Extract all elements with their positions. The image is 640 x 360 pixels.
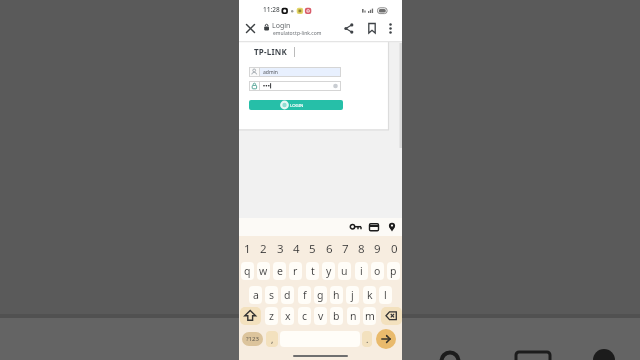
- staticText: i: [360, 264, 363, 278]
- button[interactable]: ?123: [242, 332, 263, 346]
- staticText: u: [341, 264, 348, 278]
- button[interactable]: g: [314, 286, 327, 304]
- button[interactable]: e: [273, 262, 286, 280]
- staticText: d: [284, 288, 291, 302]
- staticText: 1: [244, 241, 251, 256]
- staticText: w: [259, 264, 268, 278]
- staticText: j: [351, 288, 354, 302]
- button[interactable]: [240, 307, 261, 325]
- button[interactable]: y: [322, 262, 335, 280]
- staticText: TP-LINK: [254, 46, 287, 57]
- button[interactable]: 7: [337, 241, 353, 256]
- button[interactable]: x: [281, 307, 294, 325]
- staticText: emulator.tp-link.com: [273, 30, 322, 37]
- staticText: x: [285, 309, 291, 323]
- button[interactable]: k: [363, 286, 376, 304]
- staticText: r: [293, 264, 298, 278]
- button[interactable]: a: [249, 286, 262, 304]
- button[interactable]: ,: [266, 331, 278, 347]
- staticText: 11:28: [263, 5, 280, 14]
- staticText: e: [277, 264, 283, 278]
- staticText: y: [326, 264, 332, 278]
- button[interactable]: [244, 22, 257, 35]
- staticText: z: [269, 309, 274, 323]
- staticText: l: [384, 288, 387, 302]
- button[interactable]: m: [363, 307, 376, 325]
- button[interactable]: 1: [239, 241, 255, 256]
- button[interactable]: admin: [249, 67, 341, 77]
- button[interactable]: l: [379, 286, 392, 304]
- staticText: g: [317, 288, 324, 302]
- staticText: 7: [342, 241, 349, 256]
- staticText: 9: [374, 241, 381, 256]
- button[interactable]: f: [298, 286, 311, 304]
- button[interactable]: i: [355, 262, 368, 280]
- staticText: ?123: [246, 335, 259, 343]
- button[interactable]: LOGIN: [249, 100, 343, 110]
- button[interactable]: t: [306, 262, 319, 280]
- button[interactable]: 3: [272, 241, 288, 256]
- button[interactable]: v: [314, 307, 327, 325]
- staticText: 3: [277, 241, 284, 256]
- button[interactable]: b: [330, 307, 343, 325]
- button[interactable]: [376, 329, 396, 349]
- staticText: p: [390, 264, 397, 278]
- staticText: b: [333, 309, 340, 323]
- staticText: 6: [326, 241, 333, 256]
- button[interactable]: j: [346, 286, 359, 304]
- button[interactable]: u: [338, 262, 351, 280]
- button[interactable]: p: [387, 262, 400, 280]
- button[interactable]: .: [362, 331, 372, 347]
- button[interactable]: n: [347, 307, 360, 325]
- staticText: n: [350, 309, 357, 323]
- button[interactable]: q: [241, 262, 254, 280]
- staticText: o: [374, 264, 381, 278]
- button[interactable]: 0: [386, 241, 402, 256]
- button[interactable]: c: [298, 307, 311, 325]
- button[interactable]: [343, 22, 355, 35]
- button[interactable]: 9: [369, 241, 385, 256]
- staticText: f: [303, 288, 307, 302]
- staticText: m: [365, 309, 375, 323]
- staticText: a: [253, 288, 259, 302]
- button[interactable]: [367, 22, 378, 35]
- staticText: Login: [272, 21, 291, 31]
- button[interactable]: 5: [304, 241, 320, 256]
- staticText: 5: [309, 241, 316, 256]
- staticText: ,: [271, 333, 274, 345]
- button[interactable]: o: [371, 262, 384, 280]
- staticText: h: [333, 288, 340, 302]
- button[interactable]: [249, 81, 341, 91]
- staticText: 4: [293, 241, 300, 256]
- staticText: s: [269, 288, 275, 302]
- button[interactable]: d: [281, 286, 294, 304]
- button[interactable]: s: [265, 286, 278, 304]
- staticText: 0: [391, 241, 398, 256]
- button[interactable]: 4: [288, 241, 304, 256]
- button[interactable]: r: [289, 262, 302, 280]
- staticText: 2: [260, 241, 267, 256]
- staticText: .: [366, 333, 369, 345]
- button[interactable]: z: [265, 307, 278, 325]
- button[interactable]: [386, 21, 395, 36]
- staticText: admin: [263, 69, 278, 76]
- button[interactable]: 6: [321, 241, 337, 256]
- staticText: c: [302, 309, 308, 323]
- staticText: v: [318, 309, 324, 323]
- staticText: q: [244, 264, 251, 278]
- button[interactable]: 2: [255, 241, 271, 256]
- staticText: t: [311, 264, 315, 278]
- staticText: 8: [358, 241, 365, 256]
- button[interactable]: 8: [353, 241, 369, 256]
- button[interactable]: w: [257, 262, 270, 280]
- button[interactable]: h: [330, 286, 343, 304]
- staticText: k: [367, 288, 373, 302]
- button[interactable]: [381, 307, 402, 325]
- staticText: LOGIN: [290, 102, 304, 108]
